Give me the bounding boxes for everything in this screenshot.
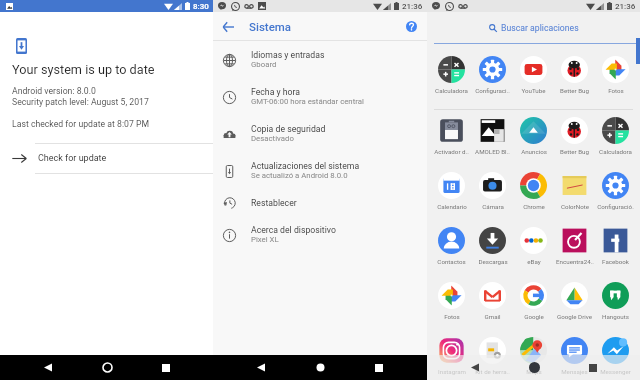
button[interactable]: Copia de seguridad [213,115,427,152]
staticText: Google [524,313,544,320]
staticText: Configuraci.. [475,87,510,94]
button[interactable]: Recents [361,355,397,380]
button[interactable]: Calendario [431,165,472,220]
staticText: Gboard [251,60,277,69]
button[interactable]: Anuncios [513,110,554,165]
button[interactable]: Calculadora [431,44,472,109]
staticText: Better Bug [560,148,589,155]
staticText: Se actualizó a Android 8.0.0 [251,171,348,180]
button[interactable]: Back [243,355,279,380]
button[interactable]: AMOLED Bl.. [472,110,513,165]
staticText: Better Bug [560,87,589,94]
staticText: Gmail [484,313,501,320]
button[interactable]: YouTube [513,44,554,109]
button[interactable]: Configuraci.. [472,44,513,109]
button[interactable]: Idiomas y entradas [213,41,427,78]
staticText: Copia de seguridad [251,124,326,134]
staticText: Anuncios [521,148,547,155]
staticText: Security patch level: August 5, 2017 [12,97,149,107]
button[interactable]: Encuentra24.. [554,220,595,275]
button[interactable]: Home [302,355,338,380]
staticText: Android version: 8.0.0 [12,86,96,96]
staticText: Cámara [482,203,504,210]
staticText: Maps [526,368,542,375]
staticText: Google Drive [557,313,592,320]
button[interactable]: Messenger [595,330,636,380]
staticText: Desactivado [251,134,294,143]
staticText: Fecha y hora [251,87,301,97]
button[interactable]: Facebook [595,220,636,275]
button[interactable]: Actualizaciones del sistema [213,152,427,189]
staticText: Actualizaciones del sistema [251,161,360,171]
staticText: Calendario [437,203,467,210]
button[interactable]: Descargas [472,220,513,275]
staticText: 21:36 [615,2,636,11]
staticText: Calculadora [435,87,468,94]
staticText: eBay [527,258,541,265]
button[interactable]: Google Drive [554,275,595,330]
staticText: Contactos [437,258,466,265]
button[interactable]: Cámara [472,165,513,220]
button[interactable]: Fotos [431,275,472,330]
staticText: Restablecer [251,198,297,208]
button[interactable]: Calculadora [595,110,636,165]
staticText: Configuració. [597,203,634,210]
button[interactable]: Mensajes [554,330,595,380]
button[interactable]: ColorNote [554,165,595,220]
button[interactable]: Back [30,355,66,380]
button[interactable]: Maps [513,330,554,380]
button[interactable]: Restablecer [213,189,427,216]
button[interactable]: Hangouts [595,275,636,330]
staticText: Fotos [444,313,460,320]
button[interactable]: Instagram [431,330,472,380]
button[interactable]: Google [513,275,554,330]
button[interactable]: Activador d.. [431,110,472,165]
staticText: Idiomas y entradas [251,50,325,60]
staticText: Sistema [249,20,292,33]
staticText: ColorNote [561,203,589,210]
staticText: Activador d.. [434,148,469,155]
button[interactable]: Configuració. [595,165,636,220]
staticText: Descargas [478,258,508,265]
button[interactable]: Home [516,355,552,380]
staticText: Hangouts [602,313,629,320]
staticText: YouTube [521,87,546,94]
staticText: Your system is up to date [12,62,155,77]
button[interactable]: Check for update [0,144,213,173]
button[interactable]: Better Bug [554,110,595,165]
button[interactable]: Back [457,355,493,380]
staticText: Messenger [600,368,631,375]
staticText: Kit de herra.. [475,368,510,375]
staticText: Mensajes [561,368,588,375]
button[interactable]: Recents [148,355,184,380]
button[interactable]: Better Bug [554,44,595,109]
staticText: Facebook [602,258,629,265]
button[interactable]: Chrome [513,165,554,220]
staticText: Last checked for update at 8:07 PM [12,119,150,129]
button[interactable]: Back [217,15,240,38]
staticText: 21:36 [402,2,423,11]
staticText: Instagram [438,368,466,375]
button[interactable]: eBay [513,220,554,275]
staticText: Check for update [38,153,107,164]
staticText: Encuentra24.. [556,258,594,265]
button[interactable]: Buscar aplicaciones [427,12,640,43]
staticText: 8:30 [193,2,209,11]
staticText: Acerca del dispositivo [251,225,336,235]
button[interactable]: Fecha y hora [213,78,427,115]
staticText: Chrome [523,203,545,210]
staticText: Calculadora [599,148,632,155]
button[interactable]: Home [89,355,125,380]
staticText: AMOLED Bl.. [475,148,510,155]
button[interactable]: Gmail [472,275,513,330]
staticText: Fotos [608,87,624,94]
staticText: GMT-06:00 hora estándar central [251,97,364,106]
button[interactable]: Contactos [431,220,472,275]
button[interactable]: Acerca del dispositivo [213,216,427,253]
staticText: Buscar aplicaciones [501,23,579,33]
button[interactable]: Fotos [595,44,636,109]
button[interactable]: Recents [575,355,611,380]
button[interactable]: Kit de herra.. [472,330,513,380]
staticText: Pixel XL [251,235,279,244]
button[interactable]: Help [401,16,421,36]
